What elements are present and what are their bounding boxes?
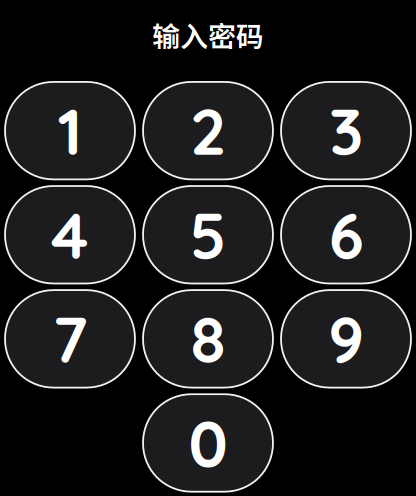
staticText: 0 [188,403,227,483]
button[interactable]: 2 [143,82,273,179]
button[interactable]: 8 [143,290,273,388]
button[interactable]: 0 [143,394,273,492]
button[interactable]: 6 [281,186,411,283]
staticText: 9 [328,299,364,379]
button[interactable]: 1 [5,82,135,179]
staticText: 4 [51,195,89,275]
button[interactable]: 3 [281,82,411,179]
staticText: 7 [52,299,87,379]
staticText: 输入密码 [152,14,264,55]
staticText: 2 [190,91,226,171]
staticText: 1 [57,91,82,171]
button[interactable]: 4 [5,186,135,283]
staticText: 8 [190,299,225,379]
button[interactable]: 7 [5,290,135,388]
button[interactable]: 5 [143,186,273,283]
staticText: 6 [328,195,363,275]
staticText: 3 [329,91,363,171]
staticText: 5 [189,195,226,275]
button[interactable]: 9 [281,290,411,388]
